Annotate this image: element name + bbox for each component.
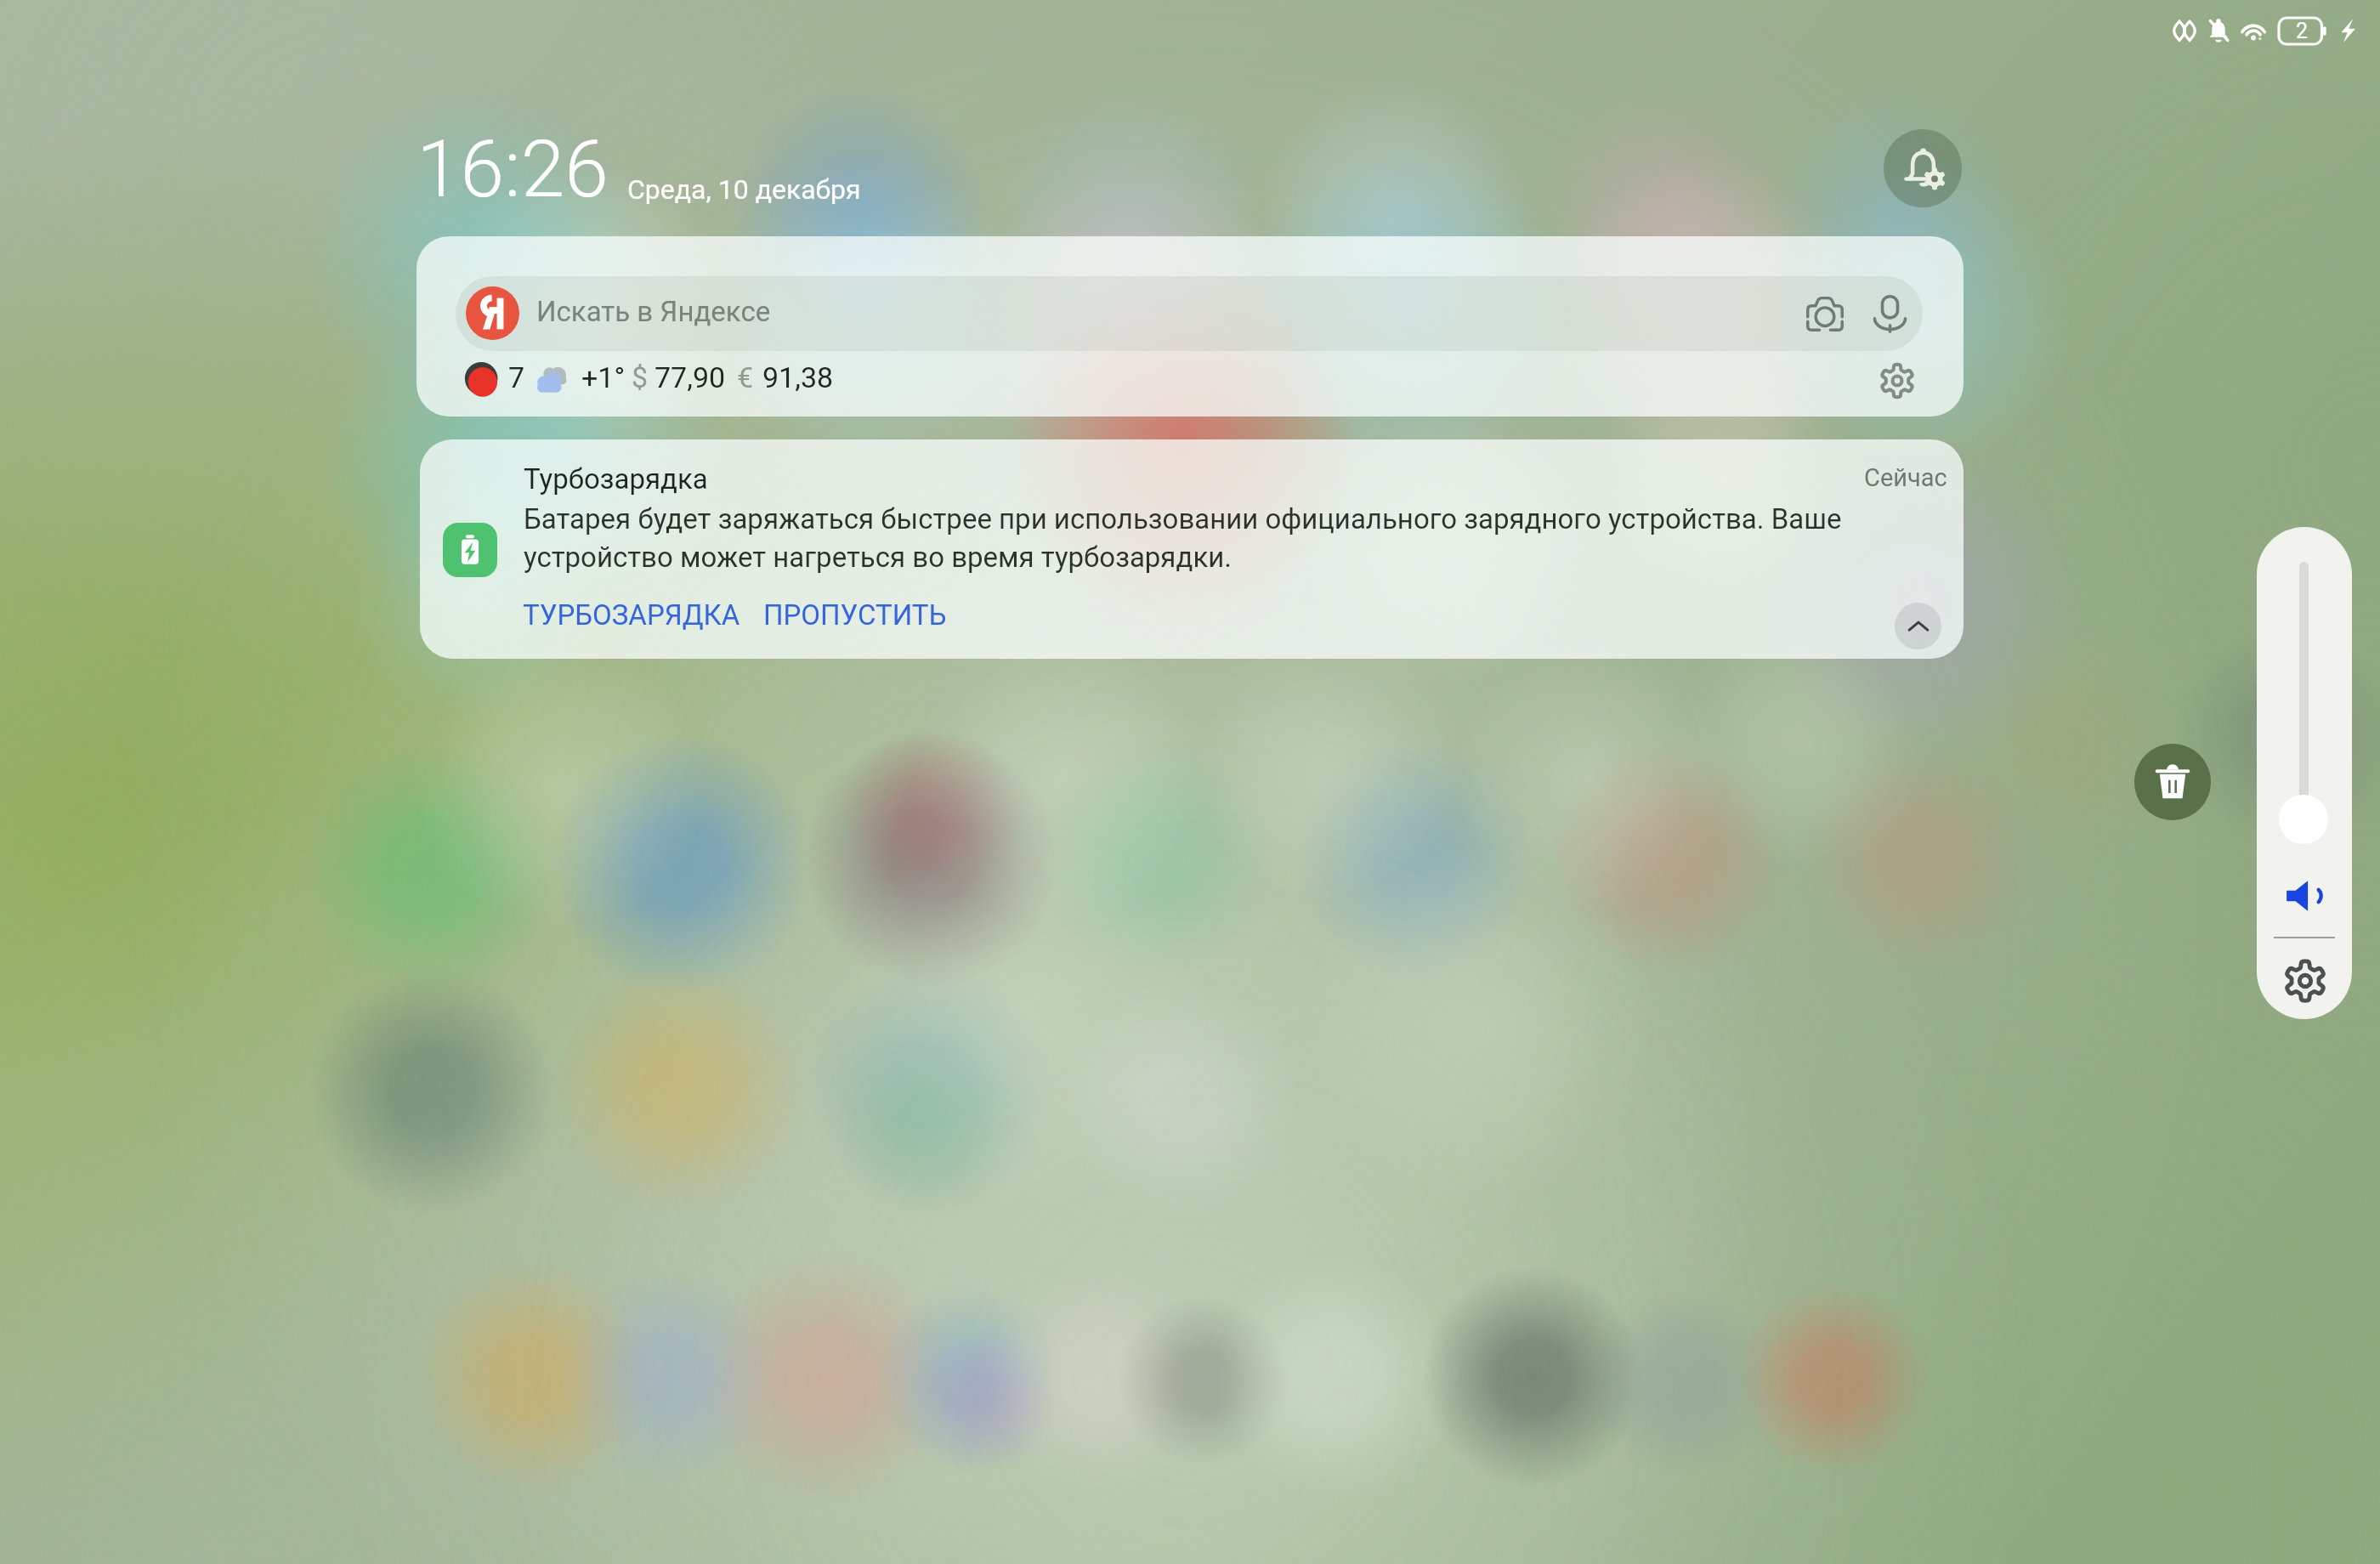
button[interactable]: Турбозарядка <box>420 439 1963 659</box>
staticText: Среда, 10 декабря <box>627 173 861 206</box>
button[interactable]: Voice search <box>1871 294 1909 332</box>
button[interactable]: Widget settings <box>1877 360 1918 401</box>
button[interactable]: Delete <box>2134 744 2211 820</box>
button[interactable]: Volume level <box>2279 795 2328 844</box>
staticText: 77,90 <box>654 360 726 394</box>
button[interactable]: Искать в Яндексе <box>416 236 1963 416</box>
staticText: 7 <box>508 360 525 394</box>
staticText: 2 <box>2296 19 2309 43</box>
button[interactable]: Notification settings <box>1884 129 1962 207</box>
button[interactable]: ПРОПУСТИТЬ <box>762 592 949 638</box>
button[interactable]: ТУРБОЗАРЯДКА <box>521 592 742 638</box>
button[interactable]: Sound settings <box>2281 956 2330 1006</box>
button[interactable]: Collapse notification <box>1895 603 1941 649</box>
staticText: +1° <box>581 360 626 394</box>
staticText: Турбозарядка <box>524 462 708 496</box>
staticText: € <box>737 360 754 394</box>
staticText: 91,38 <box>762 360 834 394</box>
staticText: Сейчас <box>1864 463 1947 492</box>
staticText: ТУРБОЗАРЯДКА <box>523 598 740 632</box>
staticText: ПРОПУСТИТЬ <box>763 598 947 632</box>
button[interactable]: Искать в Яндексе <box>456 276 1923 351</box>
button[interactable]: Search by image <box>1805 294 1844 333</box>
button[interactable]: Volume <box>2283 874 2327 918</box>
staticText: $ <box>632 360 649 394</box>
staticText: Искать в Яндексе <box>536 295 771 328</box>
staticText: 16:26 <box>416 123 609 216</box>
staticText: Батарея будет заряжаться быстрее при исп… <box>524 502 1858 574</box>
